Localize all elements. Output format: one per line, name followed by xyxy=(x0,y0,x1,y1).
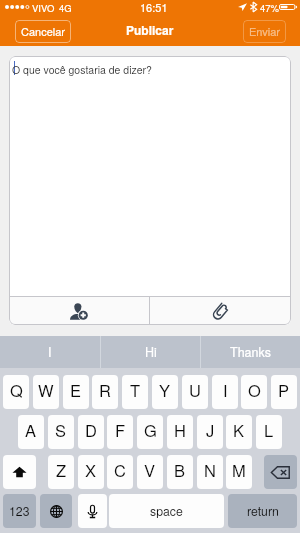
staticText: Z xyxy=(56,458,67,482)
button[interactable]: Z xyxy=(48,455,74,489)
button[interactable]: M xyxy=(226,455,252,489)
staticText: E xyxy=(70,378,82,402)
staticText: X xyxy=(85,458,97,482)
button[interactable]: Backspace xyxy=(264,455,297,489)
staticText: K xyxy=(233,418,245,442)
staticText: Thanks xyxy=(230,343,271,361)
button[interactable]: J xyxy=(197,415,223,449)
button[interactable]: space xyxy=(109,494,224,528)
button[interactable]: I xyxy=(0,336,100,368)
staticText: V xyxy=(144,458,156,482)
staticText: A xyxy=(25,418,37,442)
button[interactable]: S xyxy=(48,415,74,449)
button[interactable]: X xyxy=(78,455,104,489)
staticText: T xyxy=(130,378,141,402)
button[interactable]: Change keyboard xyxy=(40,494,72,528)
button[interactable]: L xyxy=(256,415,282,449)
button[interactable]: Cancelar xyxy=(15,20,71,43)
button[interactable]: O xyxy=(241,375,267,409)
staticText: Enviar xyxy=(249,23,281,39)
staticText: B xyxy=(174,458,186,482)
staticText: N xyxy=(204,458,216,482)
button[interactable]: D xyxy=(78,415,104,449)
staticText: I xyxy=(48,343,52,361)
button[interactable]: W xyxy=(33,375,59,409)
button[interactable]: Attach file xyxy=(150,297,291,325)
staticText: 123 xyxy=(9,502,30,520)
staticText: space xyxy=(150,502,183,520)
staticText: VIVO xyxy=(32,1,55,15)
staticText: Q xyxy=(10,378,23,402)
staticText: J xyxy=(206,418,215,442)
button[interactable]: R xyxy=(92,375,118,409)
staticText: Y xyxy=(159,378,171,402)
staticText: 16:51 xyxy=(140,0,168,13)
button[interactable]: return xyxy=(228,494,297,528)
button[interactable]: Q xyxy=(3,375,29,409)
staticText: 47% xyxy=(260,1,280,15)
staticText: H xyxy=(174,418,186,442)
staticText: O xyxy=(248,378,261,402)
staticText: Hi xyxy=(145,343,157,361)
staticText: W xyxy=(38,378,54,402)
staticText: O que você gostaria de dizer? xyxy=(12,62,152,77)
button[interactable]: Y xyxy=(152,375,178,409)
button[interactable]: Shift xyxy=(3,455,36,489)
staticText: D xyxy=(85,418,97,442)
button[interactable]: P xyxy=(271,375,297,409)
staticText: return xyxy=(247,502,279,520)
button[interactable]: Dictate xyxy=(78,494,107,528)
button[interactable]: Thanks xyxy=(201,336,300,368)
button[interactable]: G xyxy=(137,415,163,449)
staticText: L xyxy=(264,418,274,442)
button[interactable]: N xyxy=(197,455,223,489)
button[interactable]: I xyxy=(212,375,238,409)
button[interactable]: K xyxy=(226,415,252,449)
staticText: P xyxy=(278,378,290,402)
staticText: C xyxy=(114,458,126,482)
staticText: F xyxy=(115,418,126,442)
staticText: G xyxy=(144,418,157,442)
button[interactable]: Hi xyxy=(101,336,200,368)
button[interactable]: H xyxy=(167,415,193,449)
button[interactable]: T xyxy=(122,375,148,409)
button[interactable]: U xyxy=(182,375,208,409)
button[interactable]: V xyxy=(137,455,163,489)
button[interactable]: E xyxy=(63,375,89,409)
button[interactable]: Enviar xyxy=(243,20,286,43)
staticText: R xyxy=(99,378,111,402)
button[interactable]: 123 xyxy=(3,494,36,528)
staticText: Publicar xyxy=(126,21,174,38)
button[interactable]: F xyxy=(107,415,133,449)
staticText: 4G xyxy=(59,1,72,15)
button[interactable]: Tag people xyxy=(9,297,149,325)
button[interactable]: C xyxy=(107,455,133,489)
staticText: M xyxy=(232,458,246,482)
button[interactable]: A xyxy=(18,415,44,449)
staticText: S xyxy=(55,418,67,442)
staticText: U xyxy=(189,378,201,402)
staticText: Cancelar xyxy=(21,23,66,39)
staticText: I xyxy=(223,378,228,402)
button[interactable]: B xyxy=(167,455,193,489)
